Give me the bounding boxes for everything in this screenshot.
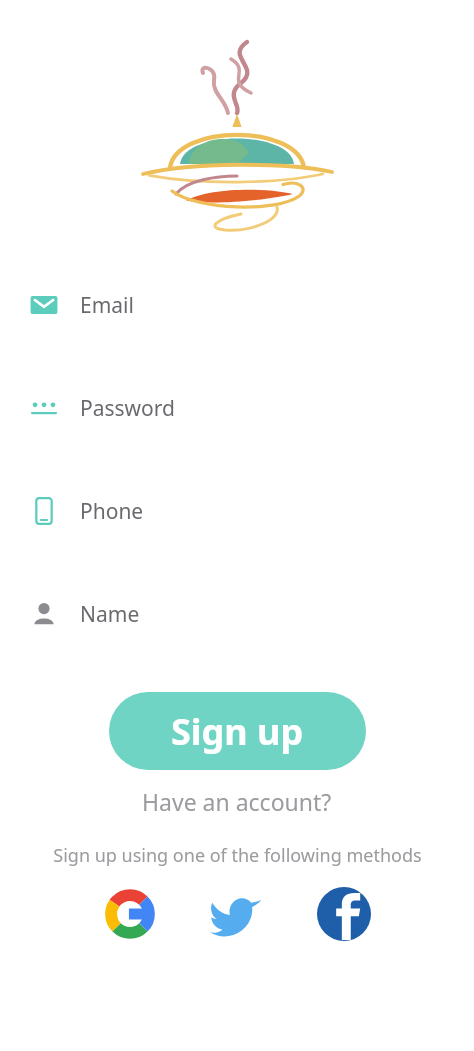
button[interactable]: Sign up: [109, 692, 366, 770]
staticText: Phone: [80, 497, 144, 526]
staticText: Email: [80, 291, 134, 320]
button[interactable]: Sign up with Facebook: [314, 884, 374, 944]
staticText: Have an account?: [142, 786, 332, 817]
staticText: Sign up: [171, 707, 304, 756]
button[interactable]: Sign up with Google: [100, 884, 160, 944]
button[interactable]: Phone: [14, 472, 460, 550]
staticText: Sign up using one of the following metho…: [53, 843, 422, 868]
button[interactable]: Name: [14, 575, 460, 653]
staticText: Password: [80, 394, 175, 423]
button[interactable]: Email: [14, 266, 460, 344]
button[interactable]: Have an account?: [132, 781, 342, 822]
button[interactable]: Password: [14, 369, 460, 447]
button[interactable]: Sign up with Twitter: [206, 884, 266, 944]
staticText: Name: [80, 600, 140, 629]
